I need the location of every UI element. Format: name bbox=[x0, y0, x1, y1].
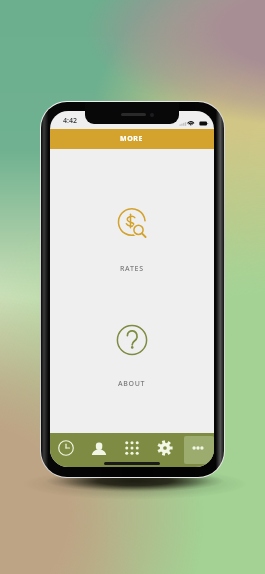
button[interactable]: Recent bbox=[50, 433, 82, 467]
staticText: MORE bbox=[120, 134, 144, 144]
button[interactable]: Profile bbox=[82, 433, 115, 467]
button[interactable]: More bbox=[181, 433, 214, 467]
staticText: 4:42 bbox=[63, 116, 77, 126]
button[interactable]: ABOUT bbox=[116, 324, 148, 389]
button[interactable]: Settings bbox=[148, 433, 181, 467]
button[interactable]: MORE bbox=[50, 129, 214, 149]
button[interactable]: Apps bbox=[115, 433, 148, 467]
button[interactable]: RATES bbox=[115, 207, 149, 274]
staticText: ABOUT bbox=[118, 379, 146, 389]
staticText: RATES bbox=[120, 264, 144, 274]
